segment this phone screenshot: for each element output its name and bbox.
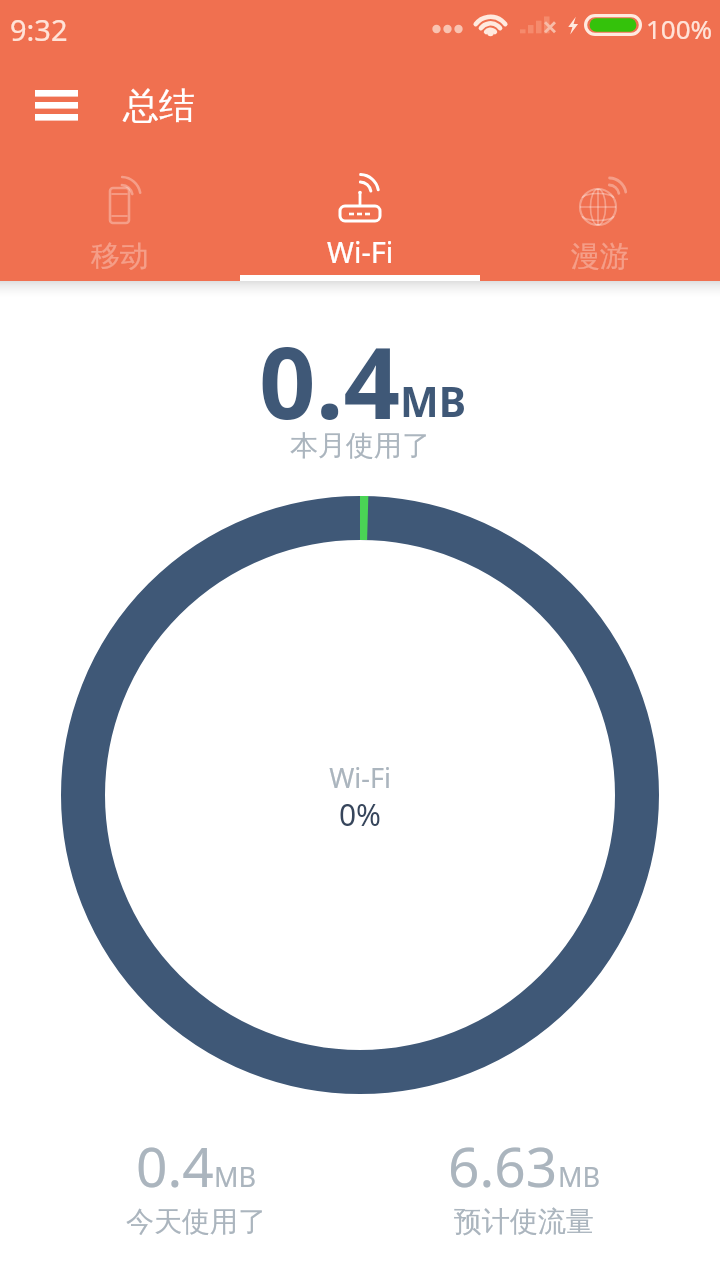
staticText: 预计使流量 <box>454 1204 594 1239</box>
staticText: 0.4 <box>259 313 401 448</box>
staticText: MB <box>400 373 466 429</box>
staticText: 0.4 <box>136 1128 214 1203</box>
button[interactable]: 6.63 <box>360 1128 688 1239</box>
staticText: 6.63 <box>448 1128 558 1203</box>
button[interactable]: Wi-Fi <box>240 145 480 281</box>
button[interactable]: Open navigation menu <box>20 74 92 136</box>
staticText: 0% <box>0 794 720 835</box>
staticText: 移动 <box>91 238 149 275</box>
staticText: 本月使用了 <box>0 428 720 463</box>
staticText: MB <box>214 1158 257 1195</box>
staticText: 漫游 <box>571 238 629 275</box>
button[interactable]: 漫游 <box>480 145 720 281</box>
button[interactable]: 0.4 <box>32 1128 360 1239</box>
staticText: Wi-Fi <box>327 232 394 271</box>
staticText: 今天使用了 <box>126 1204 266 1239</box>
staticText: Wi-Fi <box>0 759 720 796</box>
staticText: MB <box>558 1158 601 1195</box>
staticText: 100% <box>646 11 713 46</box>
staticText: 9:32 <box>10 10 68 49</box>
button[interactable]: 移动 <box>0 145 240 281</box>
staticText: 总结 <box>123 83 195 128</box>
